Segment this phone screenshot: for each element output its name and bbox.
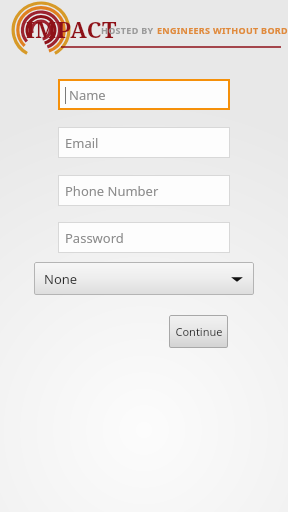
staticText: Email [65,134,99,152]
staticText: Phone Number [65,182,159,200]
button[interactable]: None [34,262,254,295]
other: IMPACT logo [12,4,70,56]
button[interactable]: Phone Number [58,175,230,206]
staticText: Name [69,86,106,104]
staticText: HOSTED BY [101,24,157,36]
button[interactable]: Email [58,127,230,158]
button[interactable]: Password [58,222,230,253]
staticText: IMPACT [26,14,117,44]
button[interactable]: Name [58,79,230,110]
staticText: Password [65,229,124,247]
button[interactable]: Continue [169,315,228,348]
staticText: ENGINEERS WITHOUT BORDERS [157,24,288,36]
staticText: None [44,270,78,288]
staticText: Continue [175,324,223,339]
